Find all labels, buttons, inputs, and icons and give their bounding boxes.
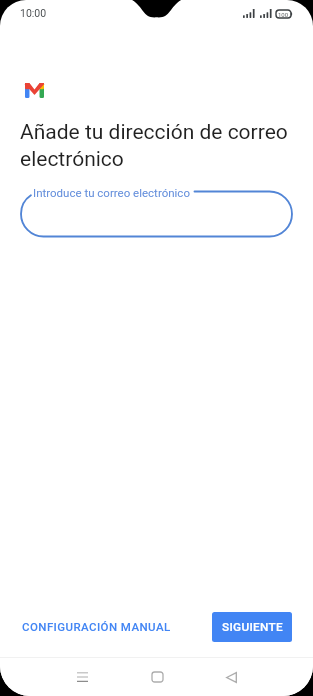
staticText: CONFIGURACIÓN MANUAL bbox=[22, 620, 171, 633]
staticText: 100 bbox=[278, 11, 289, 18]
button[interactable]: Home bbox=[135, 663, 179, 691]
button[interactable]: SIGUIENTE bbox=[212, 612, 292, 642]
button[interactable]: Recents bbox=[60, 663, 104, 691]
button[interactable]: CONFIGURACIÓN MANUAL bbox=[14, 612, 179, 641]
staticText: Añade tu dirección de correo electrónico bbox=[20, 120, 300, 171]
staticText: 10:00 bbox=[20, 7, 47, 19]
button[interactable]: Back bbox=[209, 663, 253, 691]
staticText: Introduce tu correo electrónico bbox=[33, 186, 190, 199]
staticText: SIGUIENTE bbox=[222, 620, 283, 634]
